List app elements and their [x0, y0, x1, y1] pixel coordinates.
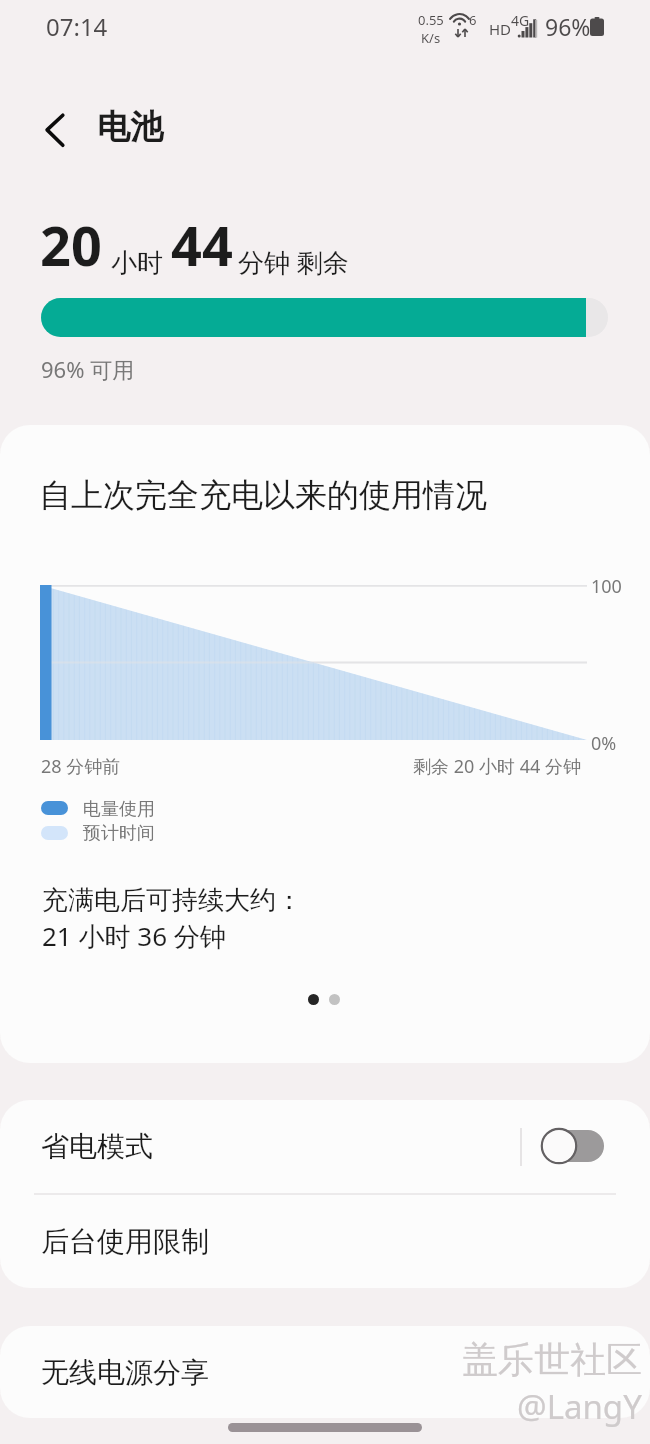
- staticText: 盖乐世社区: [462, 1337, 642, 1382]
- staticText: 后台使用限制: [41, 1224, 209, 1259]
- staticText: 剩余 20 小时 44 分钟: [413, 754, 581, 779]
- button[interactable]: 无线电源分享: [0, 1326, 650, 1418]
- staticText: 6: [469, 11, 477, 29]
- staticText: 充满电后可持续大约：: [42, 884, 302, 917]
- staticText: 预计时间: [83, 822, 155, 845]
- staticText: 分钟 剩余: [238, 244, 349, 280]
- staticText: 电池: [97, 106, 163, 148]
- staticText: 0.55: [418, 11, 444, 29]
- staticText: 20: [40, 208, 102, 282]
- staticText: 电量使用: [83, 798, 155, 821]
- staticText: 省电模式: [41, 1129, 153, 1164]
- button[interactable]: 省电模式: [0, 1100, 650, 1193]
- staticText: 100: [591, 574, 622, 599]
- staticText: 自上次完全充电以来的使用情况: [39, 475, 487, 515]
- button[interactable]: Back: [30, 102, 80, 152]
- staticText: 96% 可用: [41, 354, 135, 384]
- staticText: 小时: [111, 247, 163, 280]
- staticText: HD: [489, 19, 512, 39]
- staticText: 无线电源分享: [41, 1355, 209, 1390]
- staticText: 07:14: [46, 10, 108, 43]
- staticText: K/s: [421, 29, 441, 47]
- staticText: 96%: [545, 11, 591, 42]
- button[interactable]: Power saving mode toggle, off: [541, 1122, 619, 1172]
- staticText: @LangY: [517, 1384, 642, 1429]
- staticText: 4G: [511, 11, 530, 30]
- staticText: 44: [171, 208, 233, 282]
- staticText: 21 小时 36 分钟: [42, 918, 226, 954]
- staticText: 0%: [591, 731, 617, 756]
- staticText: 28 分钟前: [41, 754, 121, 779]
- button[interactable]: 后台使用限制: [0, 1195, 650, 1288]
